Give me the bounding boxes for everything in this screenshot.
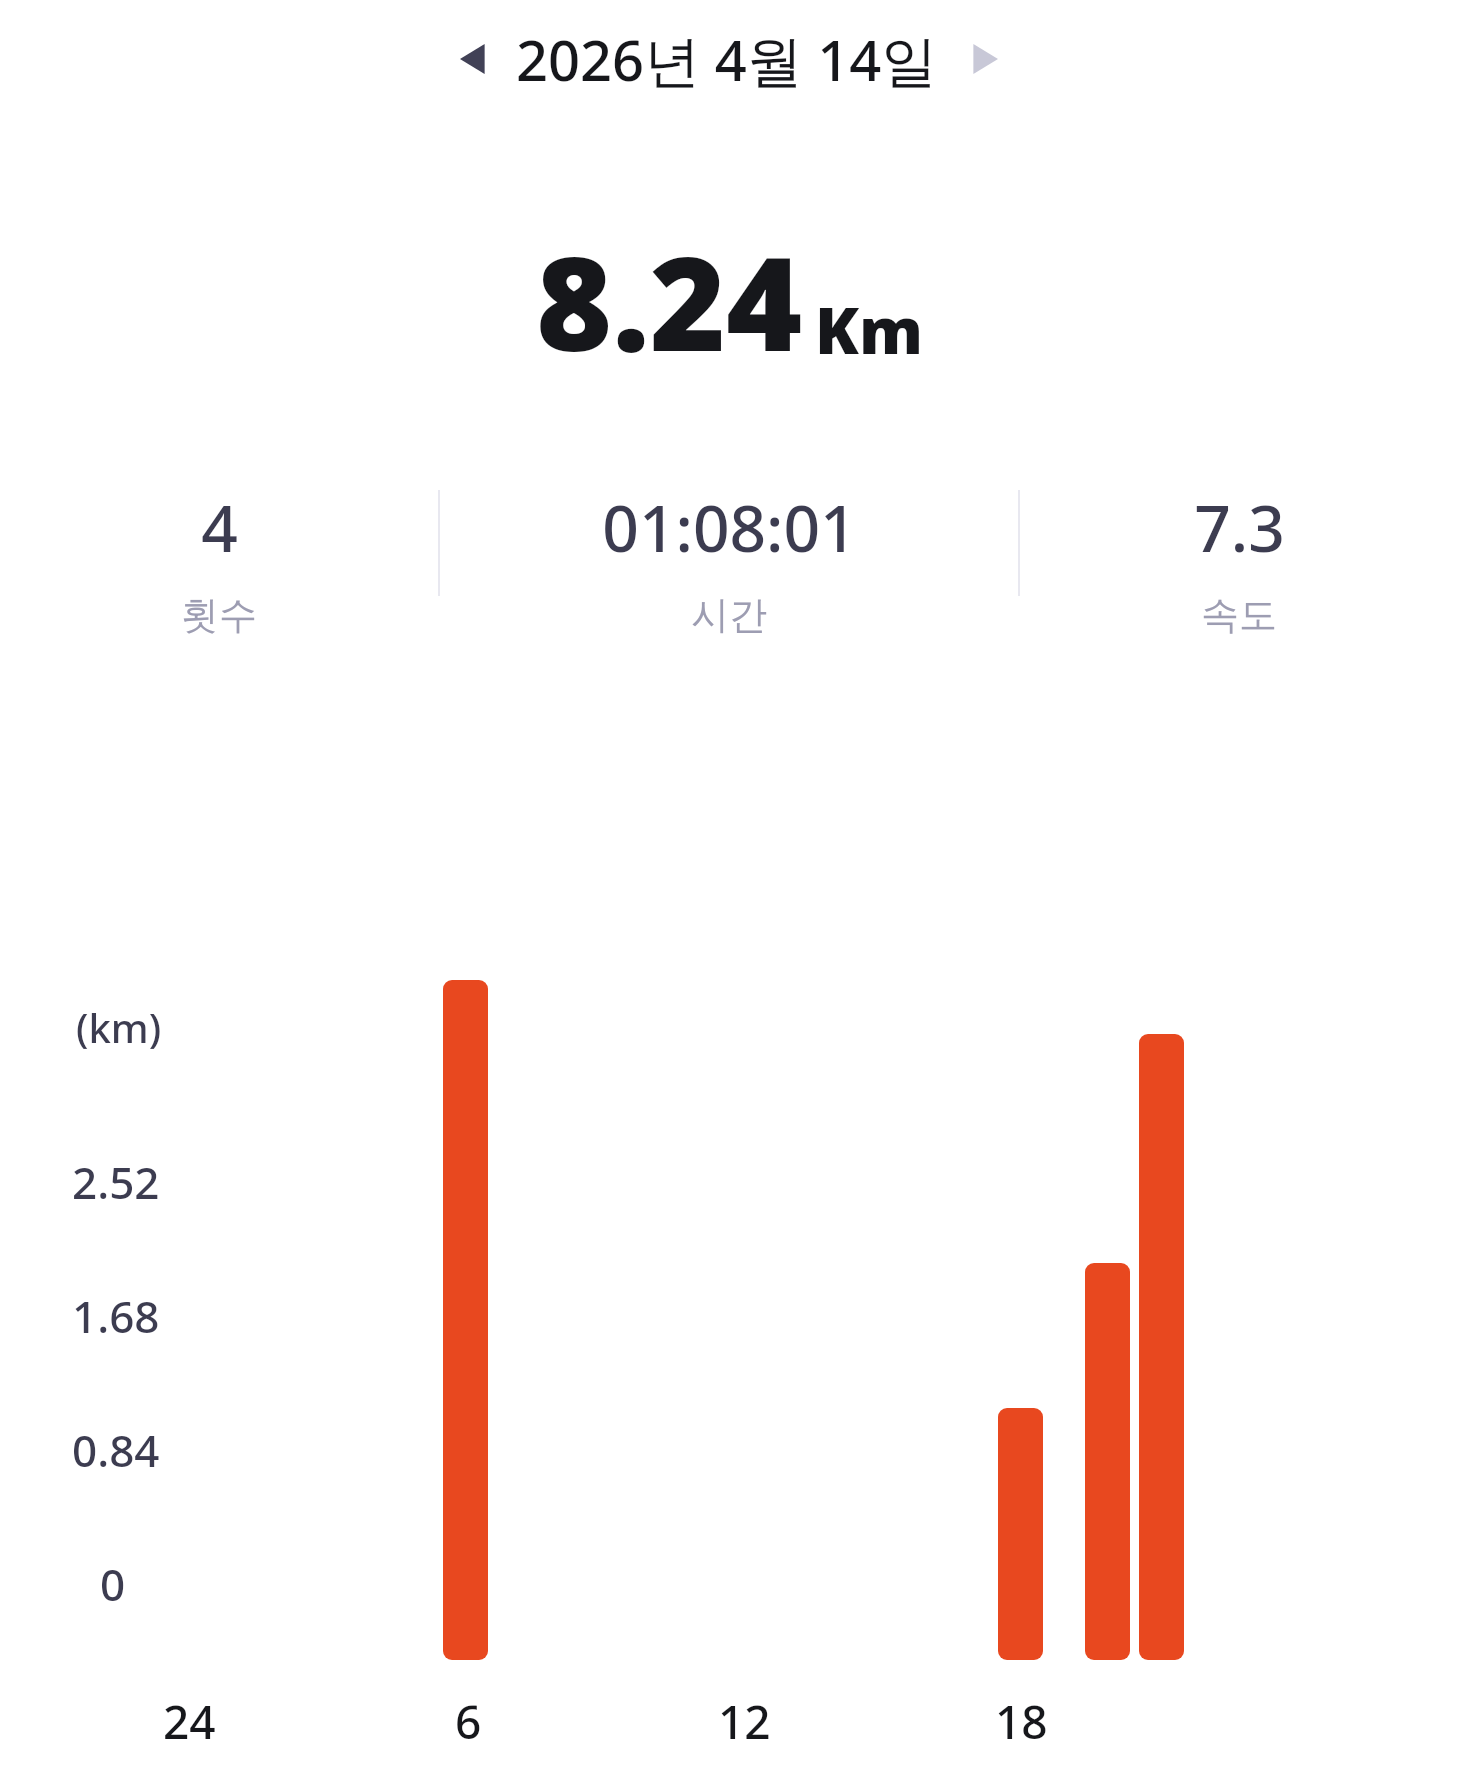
- button[interactable]: Distance by hour chart: [0, 0, 1458, 1784]
- staticText: 횟수: [181, 591, 257, 639]
- staticText: 8.24: [536, 212, 803, 389]
- button[interactable]: Next day: [952, 28, 1014, 90]
- staticText: 4: [201, 484, 238, 571]
- button[interactable]: Previous day: [444, 28, 506, 90]
- staticText: 18: [995, 1690, 1048, 1753]
- staticText: 2.52: [72, 1152, 160, 1212]
- button[interactable]: 4: [0, 484, 438, 652]
- button[interactable]: 01:08:01: [440, 484, 1018, 652]
- staticText: 01:08:01: [602, 484, 857, 571]
- staticText: 6: [455, 1690, 482, 1753]
- staticText: 0: [100, 1554, 126, 1614]
- staticText: 1.68: [72, 1286, 160, 1346]
- staticText: 시간: [691, 591, 767, 639]
- staticText: 12: [718, 1690, 771, 1753]
- staticText: 24: [163, 1690, 216, 1753]
- staticText: 속도: [1201, 591, 1277, 639]
- button[interactable]: 7.3: [1020, 484, 1458, 652]
- staticText: Km: [815, 286, 923, 373]
- staticText: 7.3: [1194, 484, 1285, 571]
- staticText: 2026년 4월 14일: [516, 21, 938, 97]
- staticText: 0.84: [72, 1420, 160, 1480]
- staticText: (km): [76, 1000, 162, 1054]
